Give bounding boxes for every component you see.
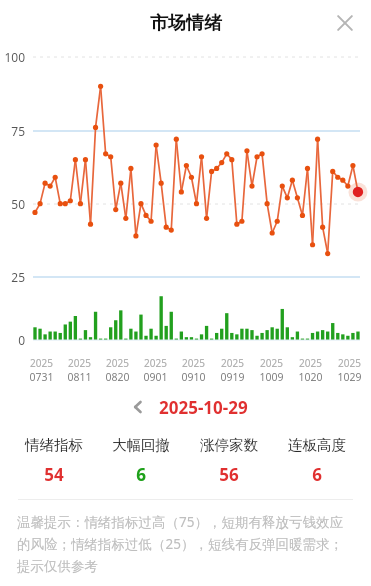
staticText: 0731 xyxy=(29,370,54,384)
staticText: 54 xyxy=(44,463,64,486)
staticText: 25 xyxy=(0,269,25,285)
staticText: 6 xyxy=(136,463,146,486)
button[interactable]: Previous day xyxy=(123,392,153,422)
staticText: 0919 xyxy=(220,370,245,384)
staticText: 56 xyxy=(219,463,239,486)
staticText: 1009 xyxy=(259,370,284,384)
button[interactable]: 2025-10-29 xyxy=(159,396,248,419)
staticText: 情绪指标 xyxy=(25,436,83,454)
staticText: 2025 xyxy=(299,356,322,370)
staticText: 0910 xyxy=(181,370,206,384)
staticText: 50 xyxy=(0,196,25,212)
button[interactable]: 连板高度 xyxy=(273,436,361,486)
staticText: 0820 xyxy=(105,370,130,384)
staticText: 0 xyxy=(0,332,25,348)
staticText: 2025 xyxy=(106,356,129,370)
staticText: 涨停家数 xyxy=(200,436,258,454)
staticText: 2025 xyxy=(338,356,361,370)
staticText: 连板高度 xyxy=(288,436,346,454)
staticText: 2025 xyxy=(30,356,53,370)
staticText: 100 xyxy=(0,49,25,65)
staticText: 1029 xyxy=(337,370,362,384)
staticText: 0901 xyxy=(143,370,168,384)
button[interactable]: 情绪指标 xyxy=(10,436,97,486)
staticText: 市场情绪 xyxy=(150,12,222,35)
staticText: 大幅回撤 xyxy=(112,436,170,454)
button[interactable]: 大幅回撤 xyxy=(97,436,185,486)
staticText: 2025 xyxy=(221,356,244,370)
staticText: 2025 xyxy=(68,356,91,370)
staticText: 1020 xyxy=(298,370,323,384)
staticText: 2025 xyxy=(144,356,167,370)
staticText: 0811 xyxy=(67,370,92,384)
staticText: 6 xyxy=(312,463,322,486)
staticText: 2025 xyxy=(260,356,283,370)
staticText: 温馨提示：情绪指标过高（75），短期有释放亏钱效应的风险；情绪指标过低（25），… xyxy=(17,513,354,575)
button[interactable]: 涨停家数 xyxy=(185,436,273,486)
button[interactable]: Close xyxy=(327,5,363,41)
staticText: 2025 xyxy=(182,356,205,370)
staticText: 75 xyxy=(0,123,25,139)
